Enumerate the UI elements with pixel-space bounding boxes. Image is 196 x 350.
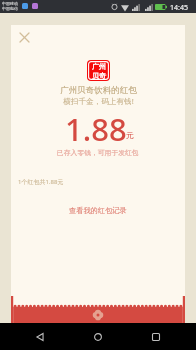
button[interactable]: Close [14, 27, 35, 48]
button[interactable]: Back [30, 327, 50, 347]
staticText: 广州贝奇饮料的红包 [60, 85, 137, 96]
staticText: 已存入零钱，可用于发红包 [57, 148, 139, 157]
staticText: 元 [126, 130, 134, 140]
staticText: 1个红包共1.88元 [18, 178, 64, 186]
staticText: 查看我的红包记录 [69, 206, 127, 215]
staticText: 贝奇 [92, 71, 106, 80]
staticText: 1.88 [65, 108, 127, 150]
button[interactable]: Home [88, 327, 108, 347]
button[interactable]: 查看我的红包记录 [63, 203, 133, 218]
staticText: 中国电信 [2, 6, 18, 11]
staticText: 广州 [92, 62, 106, 71]
staticText: 中国移动 [2, 1, 18, 6]
staticText: 14:45 [170, 3, 188, 13]
button[interactable]: Recents [146, 327, 166, 347]
staticText: 横扫千金，码上有钱! [63, 96, 134, 106]
